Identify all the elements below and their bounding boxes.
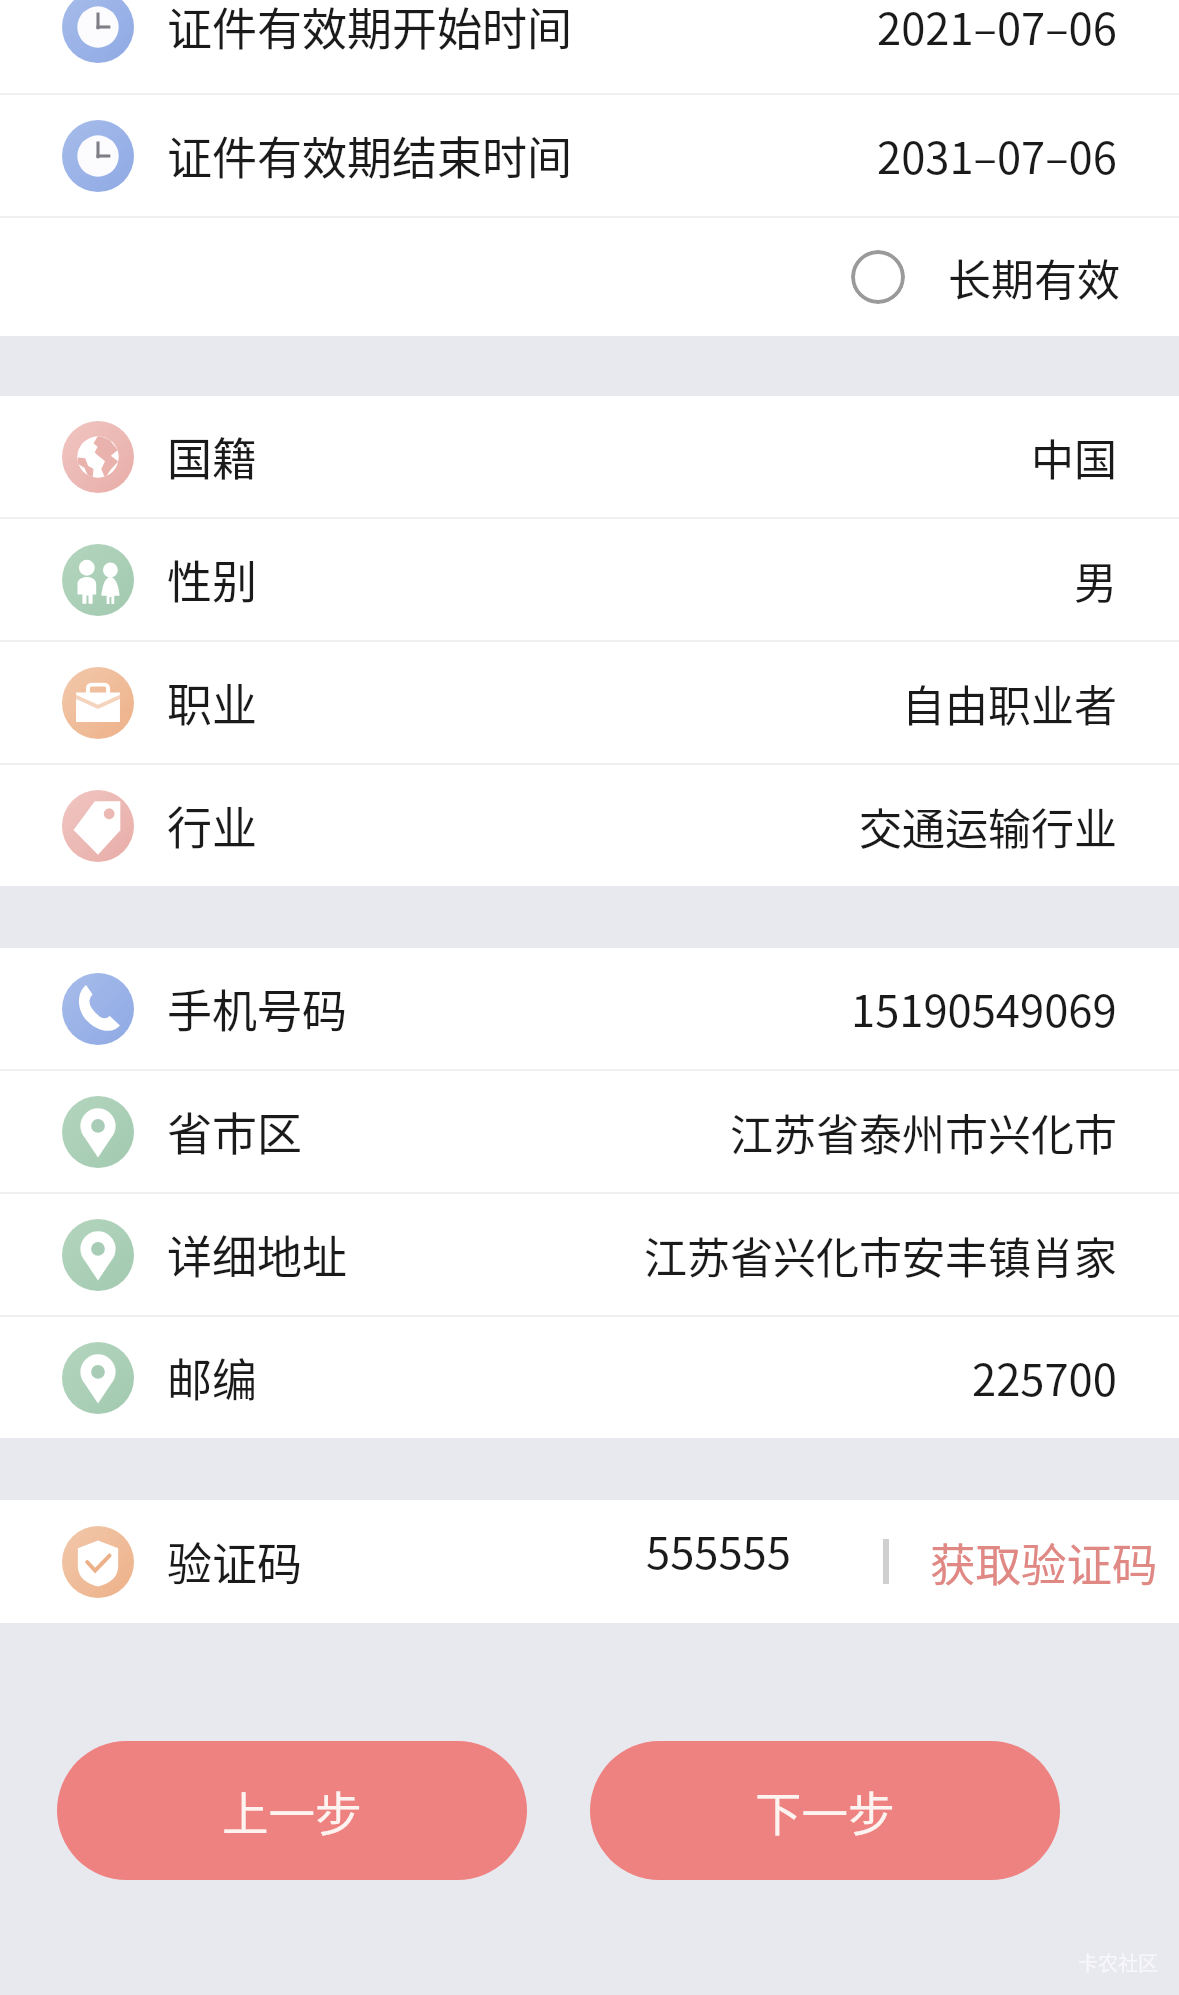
staticText: 卡农社区 xyxy=(1078,1948,1158,1977)
staticText: 证件有效期开始时间 xyxy=(167,0,573,59)
staticText: 2021–07–06 xyxy=(877,0,1117,58)
staticText: 555555 xyxy=(646,1519,791,1582)
staticText: 国籍 xyxy=(167,424,258,489)
staticText: 获取验证码 xyxy=(930,1529,1158,1595)
button[interactable]: 手机号码 xyxy=(0,948,1179,1069)
staticText: 2031–07–06 xyxy=(877,124,1117,187)
staticText: 长期有效 xyxy=(948,246,1120,308)
staticText: 男 xyxy=(1074,549,1117,611)
staticText: 行业 xyxy=(167,793,258,858)
button[interactable]: 性别 xyxy=(0,519,1179,640)
staticText: 江苏省兴化市安丰镇肖家 xyxy=(644,1224,1117,1286)
staticText: 详细地址 xyxy=(167,1222,348,1287)
staticText: 证件有效期结束时间 xyxy=(167,123,573,188)
button[interactable]: 邮编 xyxy=(0,1317,1179,1438)
button[interactable]: 行业 xyxy=(0,765,1179,886)
staticText: 交通运输行业 xyxy=(859,795,1117,857)
staticText: 下一步 xyxy=(755,1777,895,1844)
button[interactable]: 省市区 xyxy=(0,1071,1179,1192)
staticText: 江苏省泰州市兴化市 xyxy=(730,1101,1117,1163)
button[interactable]: 下一步 xyxy=(590,1741,1060,1880)
button[interactable]: 国籍 xyxy=(0,396,1179,517)
staticText: 中国 xyxy=(1031,426,1117,488)
staticText: 15190549069 xyxy=(851,977,1117,1040)
staticText: 自由职业者 xyxy=(902,672,1117,734)
staticText: 验证码 xyxy=(167,1529,303,1594)
staticText: 性别 xyxy=(167,547,258,612)
staticText: 手机号码 xyxy=(167,976,348,1041)
button[interactable]: 长期有效 xyxy=(851,250,905,304)
staticText: 省市区 xyxy=(167,1099,303,1164)
button[interactable]: 上一步 xyxy=(57,1741,527,1880)
staticText: 职业 xyxy=(167,670,258,735)
button[interactable]: 获取验证码 xyxy=(894,1500,1179,1623)
button[interactable]: 证件有效期结束时间 xyxy=(0,95,1179,216)
button[interactable]: 详细地址 xyxy=(0,1194,1179,1315)
staticText: 225700 xyxy=(972,1346,1117,1409)
staticText: 上一步 xyxy=(222,1777,362,1844)
button[interactable]: 职业 xyxy=(0,642,1179,763)
button[interactable]: 长期有效 xyxy=(0,218,1179,336)
staticText: 邮编 xyxy=(167,1345,258,1410)
